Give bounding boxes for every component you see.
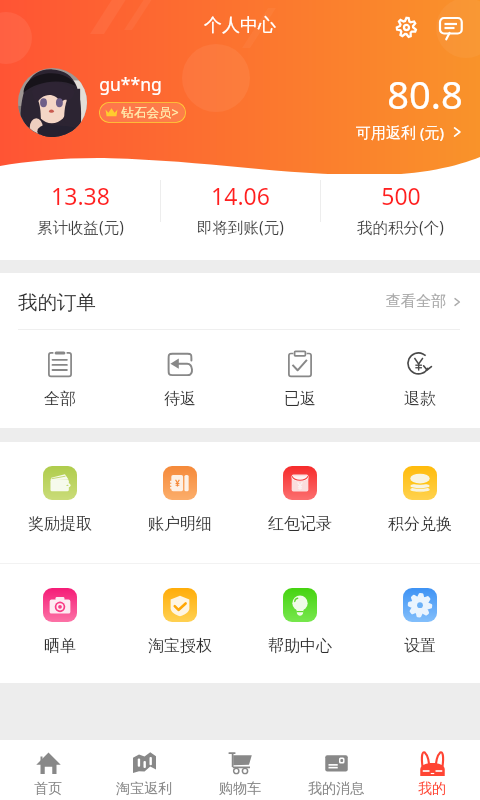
staticText: 我的 [418,780,446,798]
button[interactable]: Settings [385,6,427,48]
button[interactable]: 淘宝授权 [120,564,240,656]
button[interactable]: 积分兑换 [360,442,480,534]
staticText: 80.8 [387,68,463,120]
staticText: 钻石会员> [121,104,179,121]
staticText: gu**ng [99,72,162,96]
button[interactable]: 设置 [360,564,480,656]
staticText: 淘宝授权 [148,636,212,656]
staticText: 累计收益(元) [37,216,124,237]
staticText: 待返 [164,389,196,409]
staticText: 淘宝返利 [116,780,172,798]
button[interactable]: 待返 [120,330,240,409]
staticText: 个人中心 [204,14,276,37]
staticText: 500 [381,180,421,211]
staticText: 13.38 [51,180,110,211]
staticText: 晒单 [44,636,76,656]
staticText: 账户明细 [148,514,212,534]
staticText: 全部 [44,389,76,409]
staticText: 积分兑换 [388,514,452,534]
staticText: 即将到账(元) [197,216,284,237]
staticText: 设置 [404,636,436,656]
button[interactable]: 账户明细 [120,442,240,534]
staticText: 我的消息 [308,780,364,798]
button[interactable]: 13.38 [0,180,160,237]
button[interactable]: 退款 [360,330,480,409]
button[interactable]: 已返 [240,330,360,409]
button[interactable]: 查看全部 [382,288,466,315]
staticText: 奖励提取 [28,514,92,534]
button[interactable]: 14.06 [161,180,320,237]
button[interactable]: 我的消息 [288,742,384,798]
staticText: 我的订单 [18,290,96,315]
staticText: 退款 [404,389,436,409]
staticText: 红包记录 [268,514,332,534]
button[interactable]: 我的 [384,742,480,798]
staticText: 查看全部 [386,292,446,311]
button[interactable]: Avatar [18,68,87,137]
button[interactable]: 首页 [0,742,96,798]
button[interactable]: 80.8 [356,68,463,142]
staticText: 我的积分(个) [357,216,444,237]
button[interactable]: 500 [321,180,480,237]
button[interactable]: 帮助中心 [240,564,360,656]
staticText: 14.06 [211,180,270,211]
button[interactable]: 红包记录 [240,442,360,534]
button[interactable]: Messages [429,6,471,48]
staticText: 首页 [34,780,62,798]
button[interactable]: 晒单 [0,564,120,656]
button[interactable]: 全部 [0,330,120,409]
button[interactable]: 购物车 [192,742,288,798]
button[interactable]: 钻石会员> [99,102,186,123]
staticText: 帮助中心 [268,636,332,656]
button[interactable]: 奖励提取 [0,442,120,534]
staticText: 已返 [284,389,316,409]
staticText: 可用返利 (元) [356,122,444,142]
staticText: 购物车 [219,780,261,798]
button[interactable]: 淘宝返利 [96,742,192,798]
